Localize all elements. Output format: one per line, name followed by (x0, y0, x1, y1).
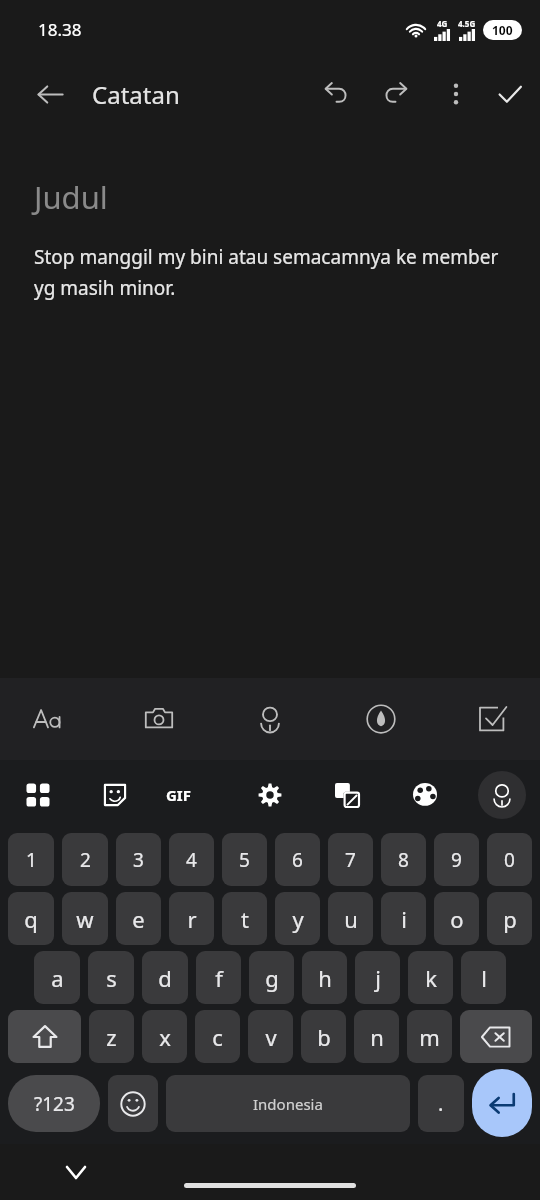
button[interactable]: l (461, 951, 506, 1004)
staticText: f (215, 963, 223, 993)
button[interactable]: y (275, 892, 320, 945)
button[interactable]: 4 (169, 833, 214, 886)
button[interactable]: m (407, 1010, 452, 1063)
button[interactable]: 5 (222, 833, 267, 886)
staticText: m (419, 1022, 440, 1052)
button[interactable]: 7 (328, 833, 373, 886)
button[interactable]: s (88, 951, 134, 1004)
button[interactable]: k (408, 951, 453, 1004)
button[interactable]: Format text (20, 691, 76, 747)
button[interactable]: . (418, 1075, 464, 1132)
staticText: 0 (504, 847, 515, 873)
button[interactable]: ?123 (8, 1075, 100, 1132)
button[interactable]: Enter (472, 1069, 532, 1137)
button[interactable]: f (196, 951, 241, 1004)
button[interactable]: Apps (14, 771, 62, 819)
staticText: r (187, 904, 197, 934)
button[interactable]: Hide keyboard (58, 1154, 94, 1190)
button[interactable]: Stickers (91, 771, 139, 819)
button[interactable]: Emoji (108, 1075, 158, 1132)
button[interactable]: a (34, 951, 80, 1004)
button[interactable]: 3 (116, 833, 161, 886)
staticText: p (503, 904, 517, 934)
button[interactable]: v (248, 1010, 293, 1063)
button[interactable]: Voice input (478, 771, 526, 819)
staticText: 8 (398, 847, 409, 873)
button[interactable]: h (302, 951, 347, 1004)
button[interactable]: 1 (8, 833, 54, 886)
button[interactable]: 0 (487, 833, 532, 886)
button[interactable]: p (487, 892, 532, 945)
staticText: z (106, 1022, 117, 1052)
staticText: y (292, 904, 304, 934)
staticText: x (159, 1022, 171, 1052)
button[interactable]: j (355, 951, 400, 1004)
button[interactable]: b (301, 1010, 346, 1063)
staticText: s (106, 963, 117, 993)
button[interactable]: t (222, 892, 267, 945)
staticText: 7 (345, 847, 356, 873)
staticText: u (344, 904, 358, 934)
staticText: 4G (437, 18, 448, 29)
staticText: 6 (292, 847, 303, 873)
button[interactable]: Checklist (464, 691, 520, 747)
staticText: h (318, 963, 332, 993)
button[interactable]: q (8, 892, 54, 945)
button[interactable]: GIF (169, 771, 217, 819)
staticText: 3 (133, 847, 144, 873)
staticText: 5 (239, 847, 250, 873)
button[interactable]: r (169, 892, 214, 945)
button[interactable]: 6 (275, 833, 320, 886)
button[interactable]: More options (434, 72, 478, 116)
button[interactable]: Undo (314, 72, 358, 116)
staticText: . (438, 1090, 444, 1117)
button[interactable]: e (116, 892, 161, 945)
button[interactable]: Redo (374, 72, 418, 116)
staticText: Indonesia (253, 1094, 323, 1114)
button[interactable]: Settings (246, 771, 294, 819)
button[interactable]: n (354, 1010, 399, 1063)
button[interactable]: z (89, 1010, 134, 1063)
button[interactable]: Back (22, 66, 78, 122)
staticText: t (241, 904, 249, 934)
staticText: d (158, 963, 172, 993)
button[interactable]: Voice (242, 691, 298, 747)
staticText: 18.38 (38, 18, 82, 41)
staticText: l (481, 963, 487, 993)
button[interactable]: o (434, 892, 479, 945)
button[interactable]: Indonesia (166, 1075, 410, 1132)
staticText: Catatan (92, 78, 180, 111)
button[interactable]: Backspace (460, 1010, 532, 1063)
button[interactable]: x (142, 1010, 187, 1063)
button[interactable]: Save (488, 72, 532, 116)
button[interactable]: w (62, 892, 108, 945)
staticText: 9 (451, 847, 462, 873)
staticText: n (370, 1022, 384, 1052)
button[interactable]: 9 (434, 833, 479, 886)
button[interactable]: Camera (131, 691, 187, 747)
button[interactable]: Shift (8, 1010, 81, 1063)
staticText: a (51, 963, 64, 993)
staticText: i (401, 904, 407, 934)
staticText: 1 (26, 847, 37, 873)
button[interactable]: d (142, 951, 188, 1004)
staticText: k (425, 963, 437, 993)
staticText: e (132, 904, 145, 934)
button[interactable]: i (381, 892, 426, 945)
staticText: b (317, 1022, 331, 1052)
staticText: ?123 (34, 1091, 75, 1117)
staticText: g (265, 963, 279, 993)
button[interactable]: 2 (62, 833, 108, 886)
staticText: Judul (34, 176, 108, 218)
button[interactable]: u (328, 892, 373, 945)
button[interactable]: Translate (323, 771, 371, 819)
staticText: Stop manggil my bini atau semacamnya ke … (34, 244, 506, 300)
staticText: v (265, 1022, 277, 1052)
staticText: w (76, 904, 94, 934)
button[interactable]: Draw (353, 691, 409, 747)
button[interactable]: c (195, 1010, 240, 1063)
staticText: 100 (492, 22, 513, 38)
button[interactable]: g (249, 951, 294, 1004)
button[interactable]: Themes (401, 771, 449, 819)
button[interactable]: 8 (381, 833, 426, 886)
